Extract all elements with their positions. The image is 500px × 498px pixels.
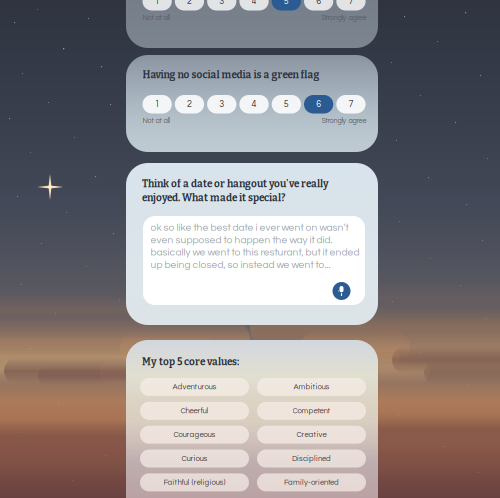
staticText: Strongly agree <box>321 14 366 21</box>
button[interactable]: Adventurous <box>140 378 249 396</box>
staticText: basically we went to this resturant, but… <box>150 247 359 258</box>
button[interactable]: 5 <box>272 0 301 10</box>
staticText: enjoyed. What made it special? <box>142 192 285 204</box>
staticText: 5 <box>284 0 289 6</box>
button[interactable]: Faithful (religious) <box>140 473 249 491</box>
staticText: even supposed to happen the way it did. <box>150 235 332 245</box>
staticText: Creative <box>296 431 326 439</box>
button[interactable]: 5 <box>272 95 301 113</box>
button[interactable]: Curious <box>140 450 249 468</box>
staticText: 1 <box>155 0 160 6</box>
button[interactable]: 3 <box>207 95 236 113</box>
button[interactable]: 7 <box>336 0 366 10</box>
button[interactable]: 4 <box>239 0 269 10</box>
staticText: 4 <box>251 100 256 109</box>
staticText: 3 <box>219 0 224 6</box>
staticText: Disciplined <box>292 455 331 463</box>
staticText: 3 <box>219 100 224 109</box>
staticText: 1 <box>155 100 160 109</box>
button[interactable]: 6 <box>304 95 333 113</box>
staticText: My top 5 core values: <box>142 356 239 368</box>
staticText: 2 <box>187 100 192 109</box>
staticText: Not at all <box>142 14 169 21</box>
button[interactable]: 2 <box>175 0 204 10</box>
staticText: 2 <box>187 0 192 6</box>
button[interactable]: Creative <box>257 426 366 444</box>
staticText: 5 <box>284 100 289 109</box>
staticText: Courageous <box>173 431 215 439</box>
button[interactable]: Cheerful <box>140 402 249 420</box>
staticText: 6 <box>316 100 321 109</box>
staticText: Strongly agree <box>321 117 366 124</box>
staticText: Family-oriented <box>284 478 339 486</box>
staticText: 4 <box>251 0 256 6</box>
staticText: Think of a date or hangout you've really <box>142 178 329 190</box>
staticText: Faithful (religious) <box>163 478 225 486</box>
staticText: Competent <box>292 407 330 415</box>
staticText: Curious <box>181 455 207 463</box>
staticText: Having no social media is a green flag <box>142 69 319 81</box>
button[interactable]: Competent <box>257 402 366 420</box>
button[interactable]: Family-oriented <box>257 473 366 491</box>
staticText: ok so like the best date i ever went on … <box>150 222 348 233</box>
staticText: Ambitious <box>293 383 329 391</box>
staticText: Cheerful <box>180 407 208 415</box>
staticText: 7 <box>348 0 353 6</box>
button[interactable]: 2 <box>175 95 204 113</box>
button[interactable]: Record voice answer <box>332 282 350 300</box>
staticText: Adventurous <box>172 383 216 391</box>
button[interactable]: Ambitious <box>257 378 366 396</box>
staticText: 7 <box>348 100 353 109</box>
staticText: 6 <box>316 0 321 6</box>
button[interactable]: Disciplined <box>257 450 366 468</box>
button[interactable]: Courageous <box>140 426 249 444</box>
button[interactable]: 6 <box>304 0 333 10</box>
button[interactable]: 1 <box>142 0 172 10</box>
staticText: Not at all <box>142 117 169 124</box>
button[interactable]: 4 <box>239 95 269 113</box>
staticText: up being closed, so instead we went to..… <box>150 260 330 270</box>
button[interactable]: 3 <box>207 0 236 10</box>
button[interactable]: 7 <box>336 95 366 113</box>
button[interactable]: 1 <box>142 95 172 113</box>
